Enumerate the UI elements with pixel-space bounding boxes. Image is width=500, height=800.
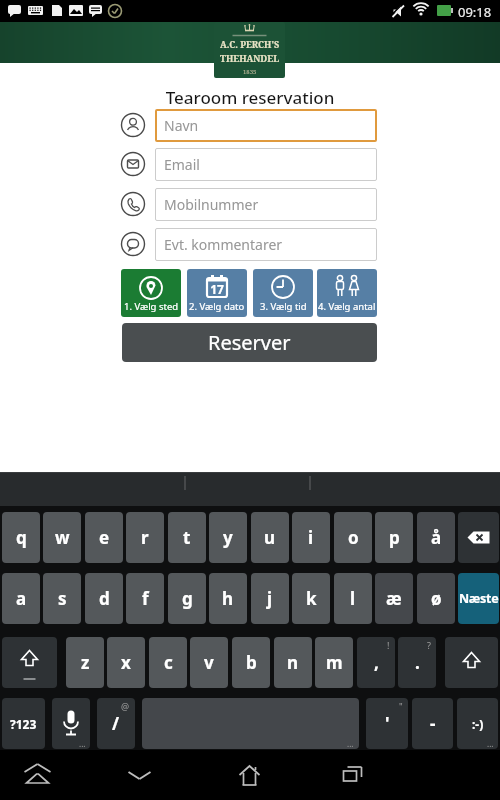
button[interactable]: e xyxy=(85,512,123,563)
button[interactable]: f xyxy=(126,573,164,624)
staticText: p xyxy=(389,526,400,549)
button[interactable]: o xyxy=(334,512,372,563)
staticText: ' xyxy=(385,712,390,735)
staticText: s xyxy=(58,587,67,610)
staticText: Email xyxy=(164,155,200,174)
button[interactable]: Navn xyxy=(155,109,377,142)
button[interactable]: ?123 xyxy=(2,698,45,749)
staticText: y xyxy=(223,526,233,549)
button[interactable]: j xyxy=(251,573,289,624)
staticText: Navn xyxy=(164,116,199,135)
button[interactable]: b xyxy=(232,637,270,688)
staticText: z xyxy=(81,651,90,674)
button[interactable]: Reserver xyxy=(122,323,377,362)
staticText: l xyxy=(350,587,356,610)
staticText: m xyxy=(326,651,343,674)
staticText: ?123 xyxy=(10,716,37,732)
button[interactable]: . xyxy=(398,637,436,688)
button[interactable]: Mobilnummer xyxy=(155,188,377,221)
staticText: Evt. kommentarer xyxy=(164,235,283,254)
staticText: Reserver xyxy=(208,329,291,356)
button[interactable]: 1. Vælg sted xyxy=(121,269,181,317)
button[interactable]: z xyxy=(66,637,104,688)
button[interactable]: ... xyxy=(52,698,90,749)
staticText: u xyxy=(264,526,276,549)
staticText: , xyxy=(374,651,379,674)
staticText: ... xyxy=(487,738,494,749)
staticText: - xyxy=(430,712,436,735)
staticText: å xyxy=(431,526,442,549)
button[interactable]: :-) xyxy=(457,698,498,749)
button[interactable]: h xyxy=(209,573,247,624)
staticText: A.C. PERCH'S xyxy=(220,38,280,50)
button[interactable]: Evt. kommentarer xyxy=(155,228,377,261)
button[interactable]: å xyxy=(417,512,455,563)
staticText: d xyxy=(99,587,110,610)
button[interactable]: , xyxy=(357,637,395,688)
button[interactable]: ø xyxy=(417,573,455,624)
staticText: ? xyxy=(427,639,431,651)
button[interactable]: - xyxy=(412,698,453,749)
staticText: 09:18 xyxy=(458,3,492,21)
staticText: Tearoom reservation xyxy=(0,86,500,108)
button[interactable]: w xyxy=(43,512,81,563)
staticText: " xyxy=(399,700,403,712)
button[interactable]: Email xyxy=(155,148,377,181)
button[interactable]: t xyxy=(168,512,206,563)
staticText: Mobilnummer xyxy=(164,195,259,214)
button[interactable] xyxy=(112,755,167,795)
staticText: æ xyxy=(386,587,402,610)
staticText: . xyxy=(415,651,420,674)
staticText: a xyxy=(16,587,27,610)
staticText: i xyxy=(308,526,314,549)
staticText: 2. Vælg dato xyxy=(189,300,245,313)
button[interactable]: æ xyxy=(375,573,413,624)
button[interactable]: l xyxy=(334,573,372,624)
staticText: 4. Vælg antal xyxy=(318,300,376,313)
button[interactable] xyxy=(325,755,380,795)
button[interactable]: 3. Vælg tid xyxy=(253,269,313,317)
staticText: @ xyxy=(121,700,130,712)
button[interactable] xyxy=(10,755,65,795)
staticText: v xyxy=(204,651,214,674)
button[interactable]: k xyxy=(292,573,330,624)
button[interactable]: c xyxy=(149,637,187,688)
staticText: h xyxy=(222,587,234,610)
button[interactable]: / xyxy=(97,698,135,749)
staticText: g xyxy=(182,587,193,610)
button[interactable]: ' xyxy=(366,698,408,749)
staticText: q xyxy=(16,526,27,549)
button[interactable]: p xyxy=(375,512,413,563)
button[interactable] xyxy=(458,512,499,563)
button[interactable] xyxy=(2,637,57,688)
button[interactable]: 4. Vælg antal xyxy=(317,269,377,317)
button[interactable]: i xyxy=(292,512,330,563)
button[interactable]: n xyxy=(274,637,312,688)
button[interactable]: s xyxy=(43,573,81,624)
staticText: 1. Vælg sted xyxy=(124,300,179,313)
button[interactable]: a xyxy=(2,573,40,624)
button[interactable]: v xyxy=(190,637,228,688)
staticText: 3. Vælg tid xyxy=(260,300,307,313)
button[interactable]: g xyxy=(168,573,206,624)
button[interactable]: q xyxy=(2,512,40,563)
button[interactable]: u xyxy=(251,512,289,563)
staticText: 1835 xyxy=(243,68,257,76)
staticText: THEHANDEL xyxy=(220,52,280,64)
button[interactable] xyxy=(445,637,498,688)
staticText: n xyxy=(287,651,299,674)
button[interactable]: d xyxy=(85,573,123,624)
staticText: r xyxy=(141,526,149,549)
button[interactable]: y xyxy=(209,512,247,563)
button[interactable]: m xyxy=(315,637,353,688)
staticText: j xyxy=(267,587,273,610)
button[interactable]: 17 xyxy=(187,269,247,317)
staticText: f xyxy=(142,587,149,610)
button[interactable]: r xyxy=(126,512,164,563)
button[interactable] xyxy=(222,755,277,795)
button[interactable]: Næste xyxy=(458,573,499,624)
button[interactable]: x xyxy=(107,637,145,688)
staticText: Næste xyxy=(459,590,499,607)
staticText: b xyxy=(246,651,257,674)
